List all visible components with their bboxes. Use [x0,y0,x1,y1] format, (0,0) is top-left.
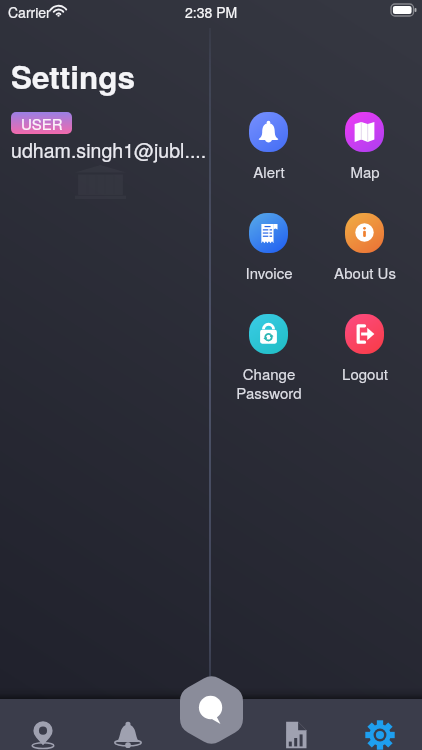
button[interactable]: Map [316,112,413,182]
button[interactable]: About Us [316,213,413,283]
staticText: Map [350,161,380,182]
staticText: udham.singh1@jubl.... [11,135,207,163]
staticText: USER [21,113,63,134]
staticText: Carrier [8,2,51,22]
button[interactable]: Logout [316,314,413,384]
staticText: Alert [253,161,285,182]
staticText: Change Password [236,363,302,403]
staticText: Invoice [245,262,293,283]
button[interactable]: Change Password [220,314,317,403]
staticText: 2:38 PM [185,2,238,22]
staticText: Logout [342,363,388,384]
button[interactable]: Invoice [220,213,317,283]
button[interactable]: Location [0,699,85,750]
button[interactable]: Chat [180,674,243,746]
button[interactable]: Alert [220,112,317,182]
staticText: Settings [11,54,136,99]
staticText: About Us [334,262,396,283]
button[interactable]: Notifications [85,699,170,750]
button[interactable]: Settings [338,699,422,750]
button[interactable]: Reports [254,699,338,750]
